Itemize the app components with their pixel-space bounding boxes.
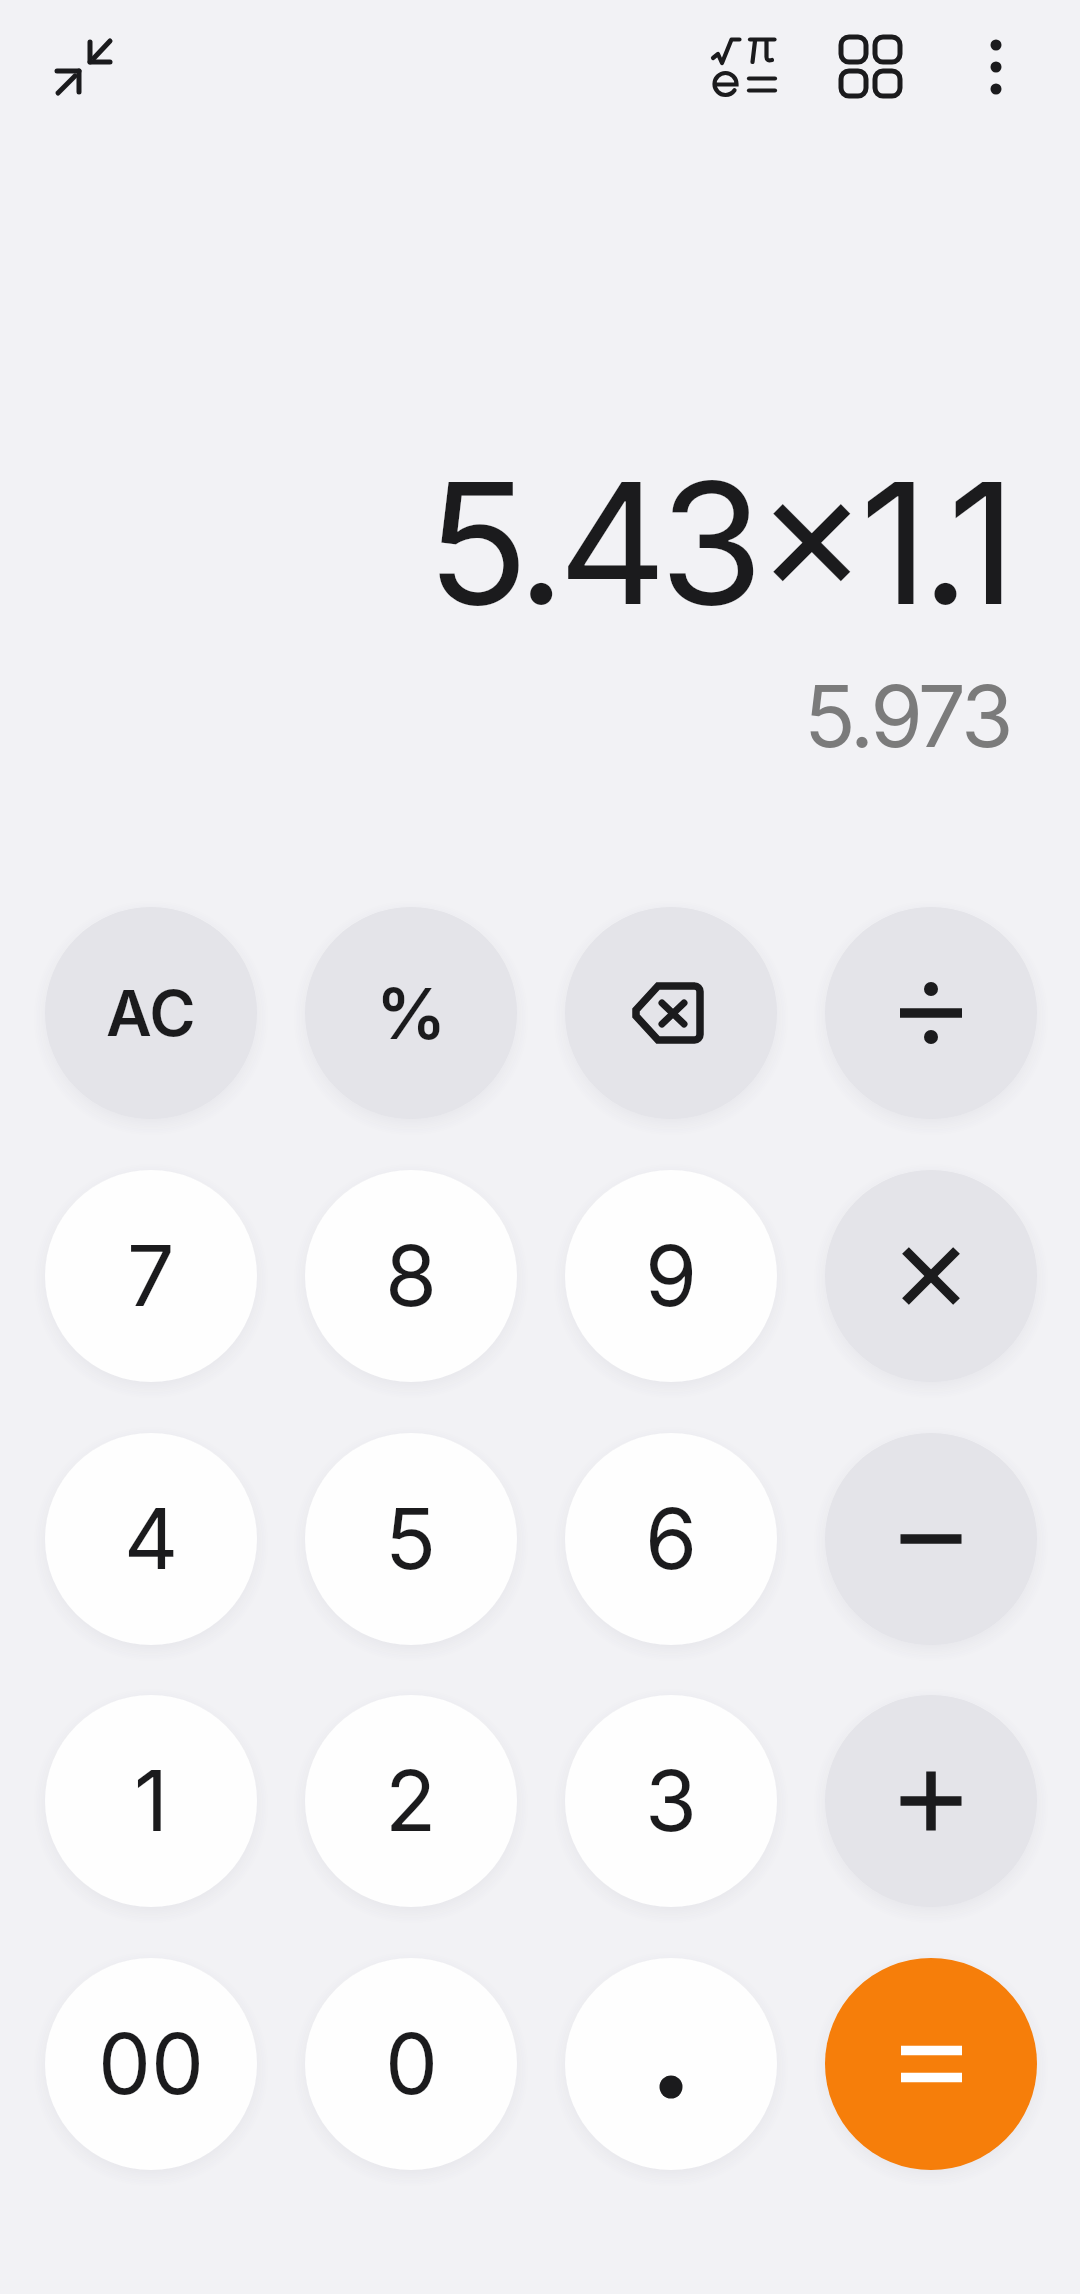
staticText: 9 [645,1225,698,1327]
staticText: % [376,971,447,1056]
button[interactable] [825,907,1037,1119]
staticText: 0 [385,2013,438,2115]
button[interactable]: 3 [565,1695,777,1907]
button[interactable] [565,907,777,1119]
button[interactable] [825,1958,1037,2170]
button[interactable] [828,25,912,109]
staticText: 5.973 [0,665,1010,785]
button[interactable]: 9 [565,1170,777,1382]
staticText: 2 [385,1750,437,1852]
button[interactable] [825,1695,1037,1907]
button[interactable]: 4 [45,1433,257,1645]
staticText: 00 [98,2013,204,2115]
button[interactable] [825,1433,1037,1645]
button[interactable]: 00 [45,1958,257,2170]
staticText: AC [106,975,196,1051]
staticText: 6 [645,1488,698,1590]
staticText: 7 [127,1225,175,1327]
button[interactable]: % [305,907,517,1119]
button[interactable]: AC [45,907,257,1119]
button[interactable]: 1 [45,1695,257,1907]
button[interactable]: 7 [45,1170,257,1382]
staticText: 8 [385,1225,437,1327]
staticText: 3 [645,1750,697,1852]
staticText: 4 [124,1488,179,1590]
button[interactable]: 5 [305,1433,517,1645]
button[interactable] [700,30,790,110]
button[interactable]: 2 [305,1695,517,1907]
staticText: 1 [134,1750,169,1852]
staticText: 5 [385,1488,437,1590]
button[interactable]: 6 [565,1433,777,1645]
staticText: 5.43×1.1 [0,441,1009,671]
button[interactable] [40,24,128,112]
button[interactable] [565,1958,777,2170]
button[interactable]: 8 [305,1170,517,1382]
button[interactable]: 0 [305,1958,517,2170]
button[interactable] [956,25,1036,105]
button[interactable] [825,1170,1037,1382]
